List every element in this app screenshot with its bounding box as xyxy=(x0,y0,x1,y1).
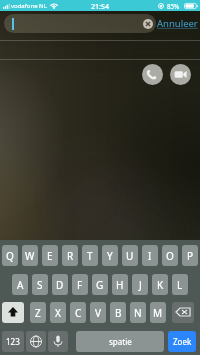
button[interactable]: U xyxy=(122,245,138,266)
button[interactable]: Clear text xyxy=(143,19,153,29)
staticText: E xyxy=(47,249,53,263)
staticText: vodafone NL xyxy=(11,2,47,10)
staticText: I xyxy=(148,249,152,263)
staticText: Y xyxy=(107,249,113,263)
button[interactable]: 123 xyxy=(2,331,24,352)
staticText: T xyxy=(87,249,93,263)
button[interactable]: N xyxy=(130,302,146,323)
button[interactable]: Switch keyboard xyxy=(26,331,46,352)
button[interactable]: X xyxy=(50,302,66,323)
button[interactable]: D xyxy=(52,274,68,295)
button[interactable]: G xyxy=(92,274,108,295)
staticText: C xyxy=(75,306,82,320)
staticText: U xyxy=(126,249,134,263)
button[interactable]: Call xyxy=(142,64,163,85)
staticText: R xyxy=(67,249,74,263)
staticText: M xyxy=(153,306,163,320)
staticText: Q xyxy=(6,249,14,263)
button[interactable]: E xyxy=(42,245,58,266)
button[interactable]: Annuleer xyxy=(157,13,198,34)
staticText: Zoek xyxy=(173,336,192,347)
button[interactable]: I xyxy=(142,245,158,266)
button[interactable]: Y xyxy=(102,245,118,266)
staticText: J xyxy=(139,278,142,292)
staticText: spatie xyxy=(109,336,132,347)
staticText: D xyxy=(56,278,64,292)
button[interactable]: M xyxy=(150,302,166,323)
button[interactable]: Clear text xyxy=(4,14,156,33)
button[interactable]: A xyxy=(12,274,28,295)
staticText: L xyxy=(177,278,183,292)
button[interactable]: P xyxy=(182,245,198,266)
button[interactable]: Backspace xyxy=(172,302,194,323)
button[interactable]: F xyxy=(72,274,88,295)
staticText: A xyxy=(17,278,24,292)
staticText: N xyxy=(134,306,142,320)
button[interactable]: V xyxy=(90,302,106,323)
button[interactable]: W xyxy=(22,245,38,266)
staticText: Annuleer xyxy=(157,17,198,30)
button[interactable]: O xyxy=(162,245,178,266)
staticText: O xyxy=(166,249,174,263)
button[interactable]: R xyxy=(62,245,78,266)
button[interactable]: Q xyxy=(2,245,18,266)
button[interactable]: B xyxy=(110,302,126,323)
button[interactable]: T xyxy=(82,245,98,266)
staticText: 21:54 xyxy=(91,2,109,12)
button[interactable]: Zoek xyxy=(168,331,196,352)
staticText: V xyxy=(95,306,101,320)
button[interactable]: H xyxy=(112,274,128,295)
staticText: X xyxy=(55,306,61,320)
staticText: B xyxy=(115,306,122,320)
button[interactable]: C xyxy=(70,302,86,323)
staticText: Z xyxy=(35,306,41,320)
button[interactable]: Shift xyxy=(2,302,24,323)
button[interactable]: J xyxy=(132,274,148,295)
button[interactable]: Video call xyxy=(170,64,191,85)
staticText: P xyxy=(187,249,194,263)
staticText: F xyxy=(77,278,83,292)
button[interactable]: Dictate xyxy=(48,331,68,352)
button[interactable]: K xyxy=(152,274,168,295)
staticText: S xyxy=(37,278,43,292)
button[interactable]: spatie xyxy=(76,331,164,352)
button[interactable]: Z xyxy=(30,302,46,323)
staticText: K xyxy=(157,278,164,292)
staticText: G xyxy=(96,278,104,292)
button[interactable]: L xyxy=(172,274,188,295)
staticText: W xyxy=(25,249,35,263)
staticText: 85% xyxy=(167,2,180,10)
staticText: H xyxy=(116,278,124,292)
button[interactable]: S xyxy=(32,274,48,295)
staticText: 123 xyxy=(6,336,20,347)
